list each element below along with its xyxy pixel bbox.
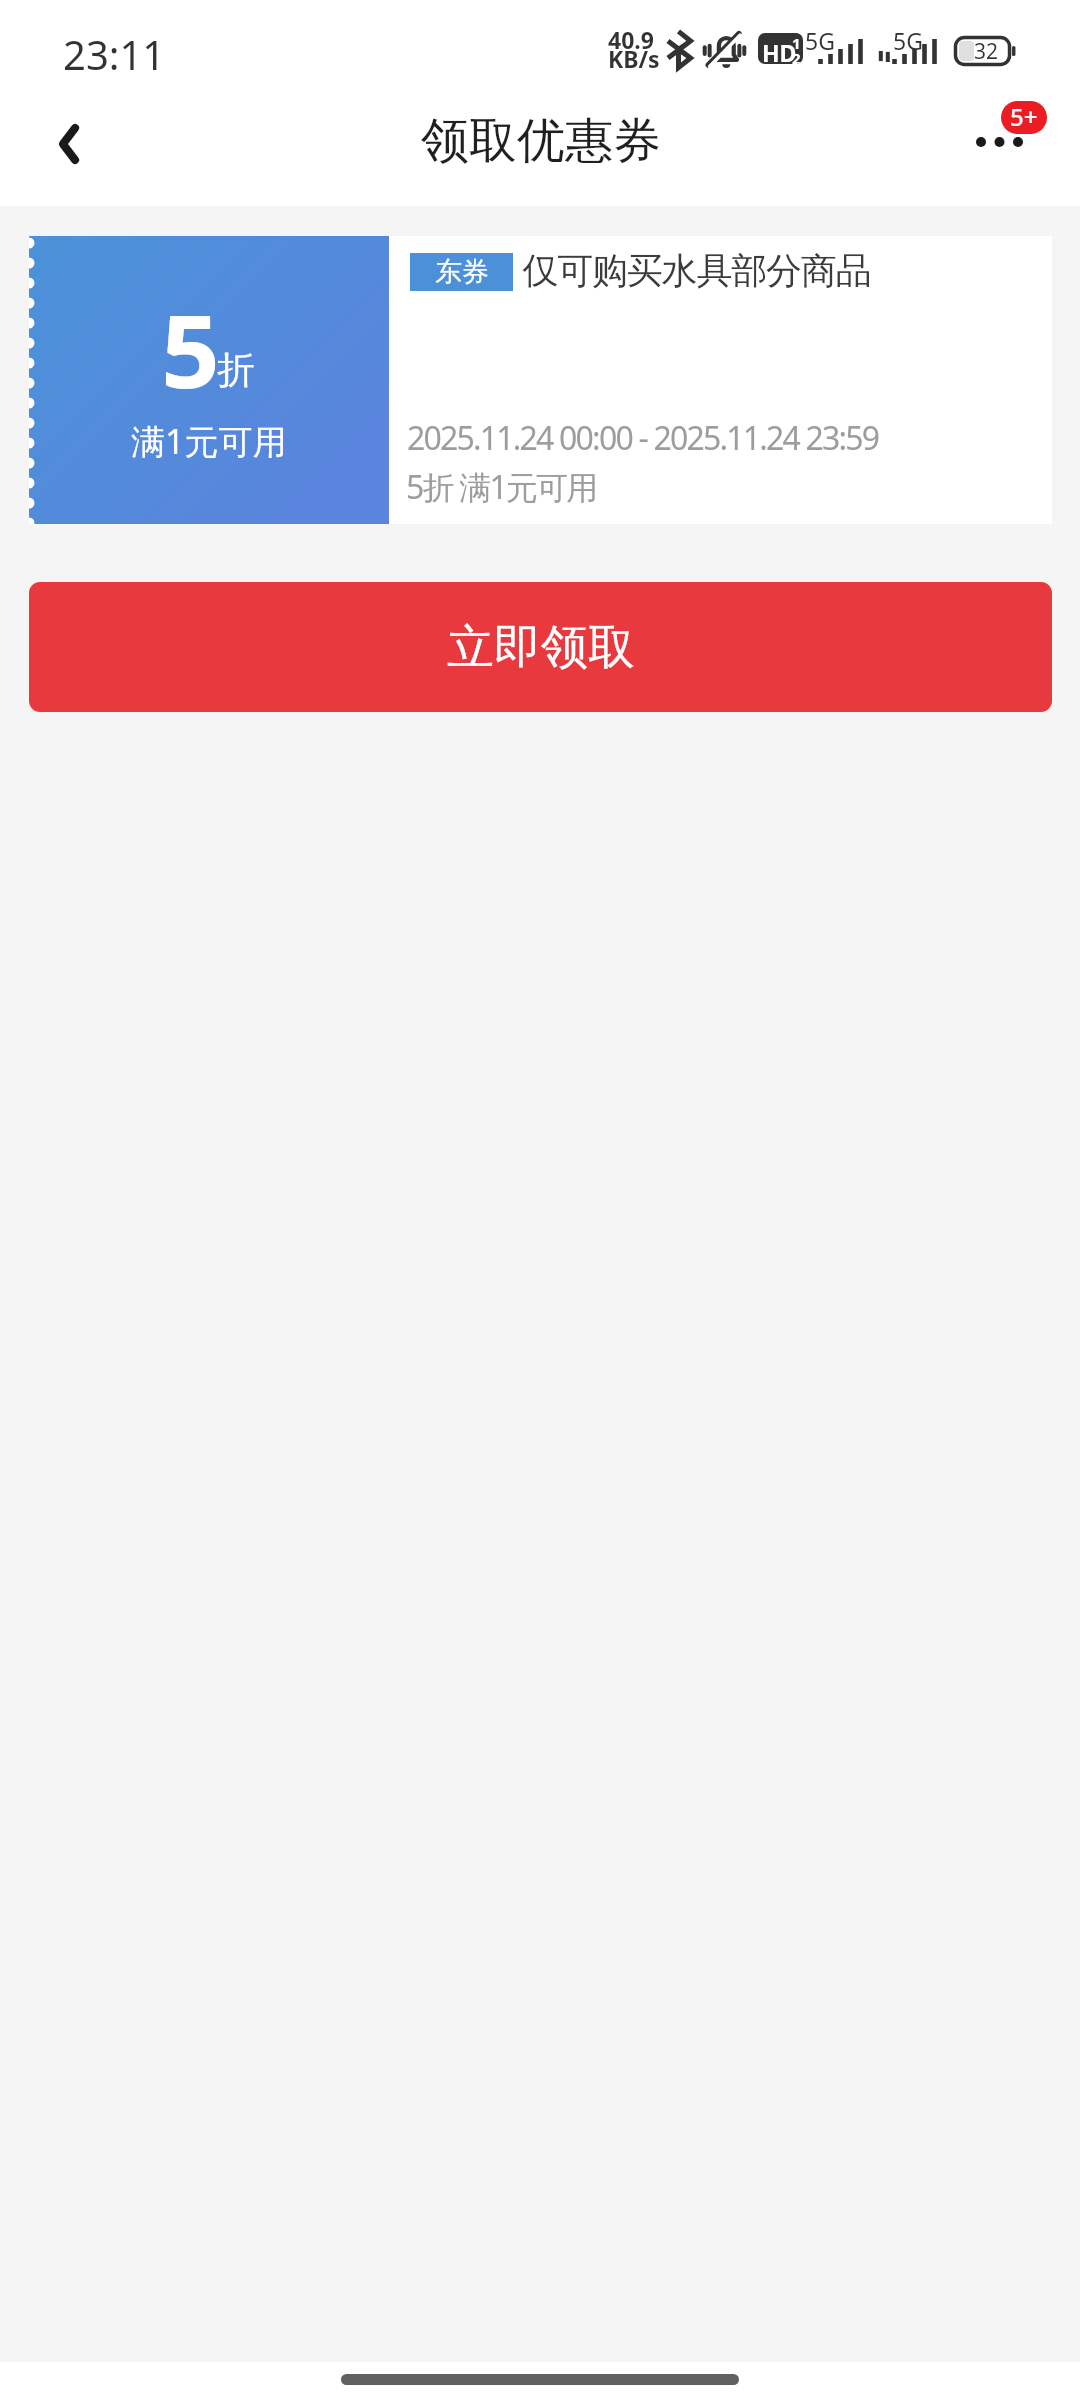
staticText: 5+	[1010, 101, 1038, 133]
staticText: 2025.11.24 00:00 - 2025.11.24 23:59	[407, 416, 879, 460]
button[interactable]: More options	[955, 96, 1065, 206]
staticText: 1	[792, 33, 801, 53]
staticText: 40.9	[608, 24, 654, 55]
staticText: 领取优惠券	[421, 111, 661, 171]
staticText: KB/s	[608, 43, 660, 74]
staticText: 5	[161, 281, 220, 417]
staticText: 5折 满1元可用	[406, 465, 597, 509]
staticText: 仅可购买水具部分商品	[523, 248, 871, 293]
staticText: 东券	[435, 255, 489, 289]
staticText: 5G	[805, 25, 835, 56]
staticText: 2	[792, 48, 801, 64]
staticText: HD	[762, 37, 797, 64]
staticText: 23:11	[63, 27, 166, 81]
staticText: 5G	[893, 25, 923, 56]
staticText: 折	[217, 346, 255, 394]
staticText: 32	[974, 37, 999, 66]
staticText: 满1元可用	[131, 418, 287, 464]
button[interactable]: 5	[29, 236, 1052, 524]
button[interactable]: Back	[19, 89, 119, 199]
staticText: 立即领取	[447, 618, 635, 677]
button[interactable]: 立即领取	[29, 582, 1052, 712]
